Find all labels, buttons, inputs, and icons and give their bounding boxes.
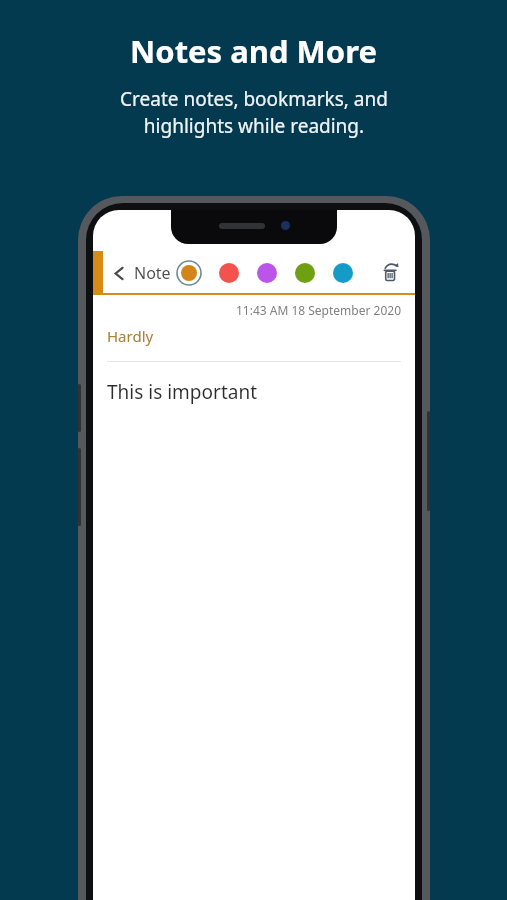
staticText: This is important (107, 379, 258, 405)
staticText: Notes and More (130, 30, 377, 72)
button[interactable]: Colour swatch (218, 262, 240, 284)
button[interactable]: Delete note (375, 257, 407, 289)
button[interactable]: Note (110, 256, 173, 290)
button[interactable]: Colour swatch (176, 260, 202, 286)
button[interactable]: Colour swatch (294, 262, 316, 284)
staticText: 11:43 AM 18 September 2020 (93, 302, 401, 318)
staticText: Create notes, bookmarks, and highlights … (120, 86, 388, 139)
button[interactable]: Colour swatch (256, 262, 278, 284)
button[interactable]: Colour swatch (332, 262, 354, 284)
staticText: Hardly (107, 326, 154, 346)
staticText: Note (134, 262, 171, 284)
